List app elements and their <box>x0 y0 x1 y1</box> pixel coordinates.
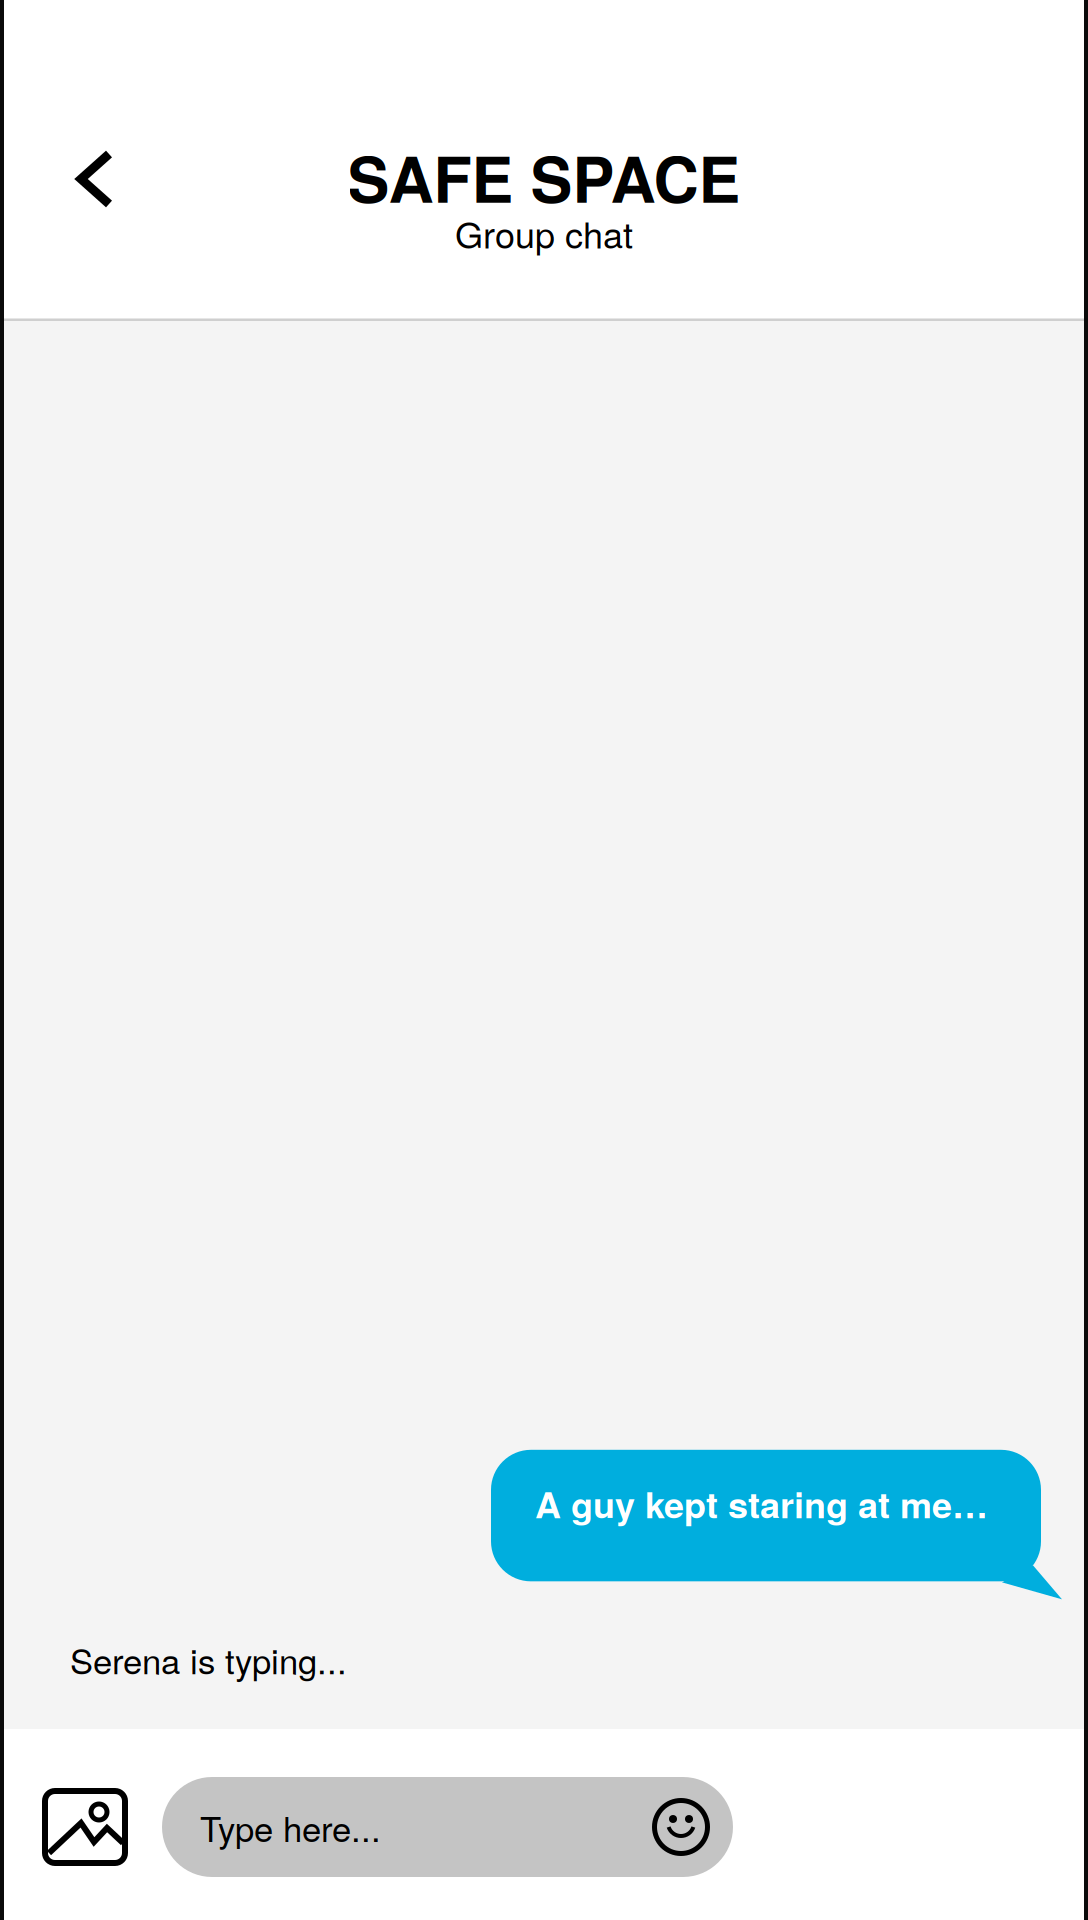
staticText: SAFE SPACE <box>347 132 740 222</box>
staticText: A guy kept staring at me… <box>535 1478 988 1529</box>
staticText: Type here... <box>200 1802 381 1852</box>
button[interactable]: Add photo <box>33 1777 137 1877</box>
button[interactable]: Back <box>43 129 147 229</box>
staticText: Serena is typing... <box>70 1634 347 1684</box>
button[interactable]: Message field <box>162 1777 733 1877</box>
staticText: Group chat <box>455 207 633 259</box>
